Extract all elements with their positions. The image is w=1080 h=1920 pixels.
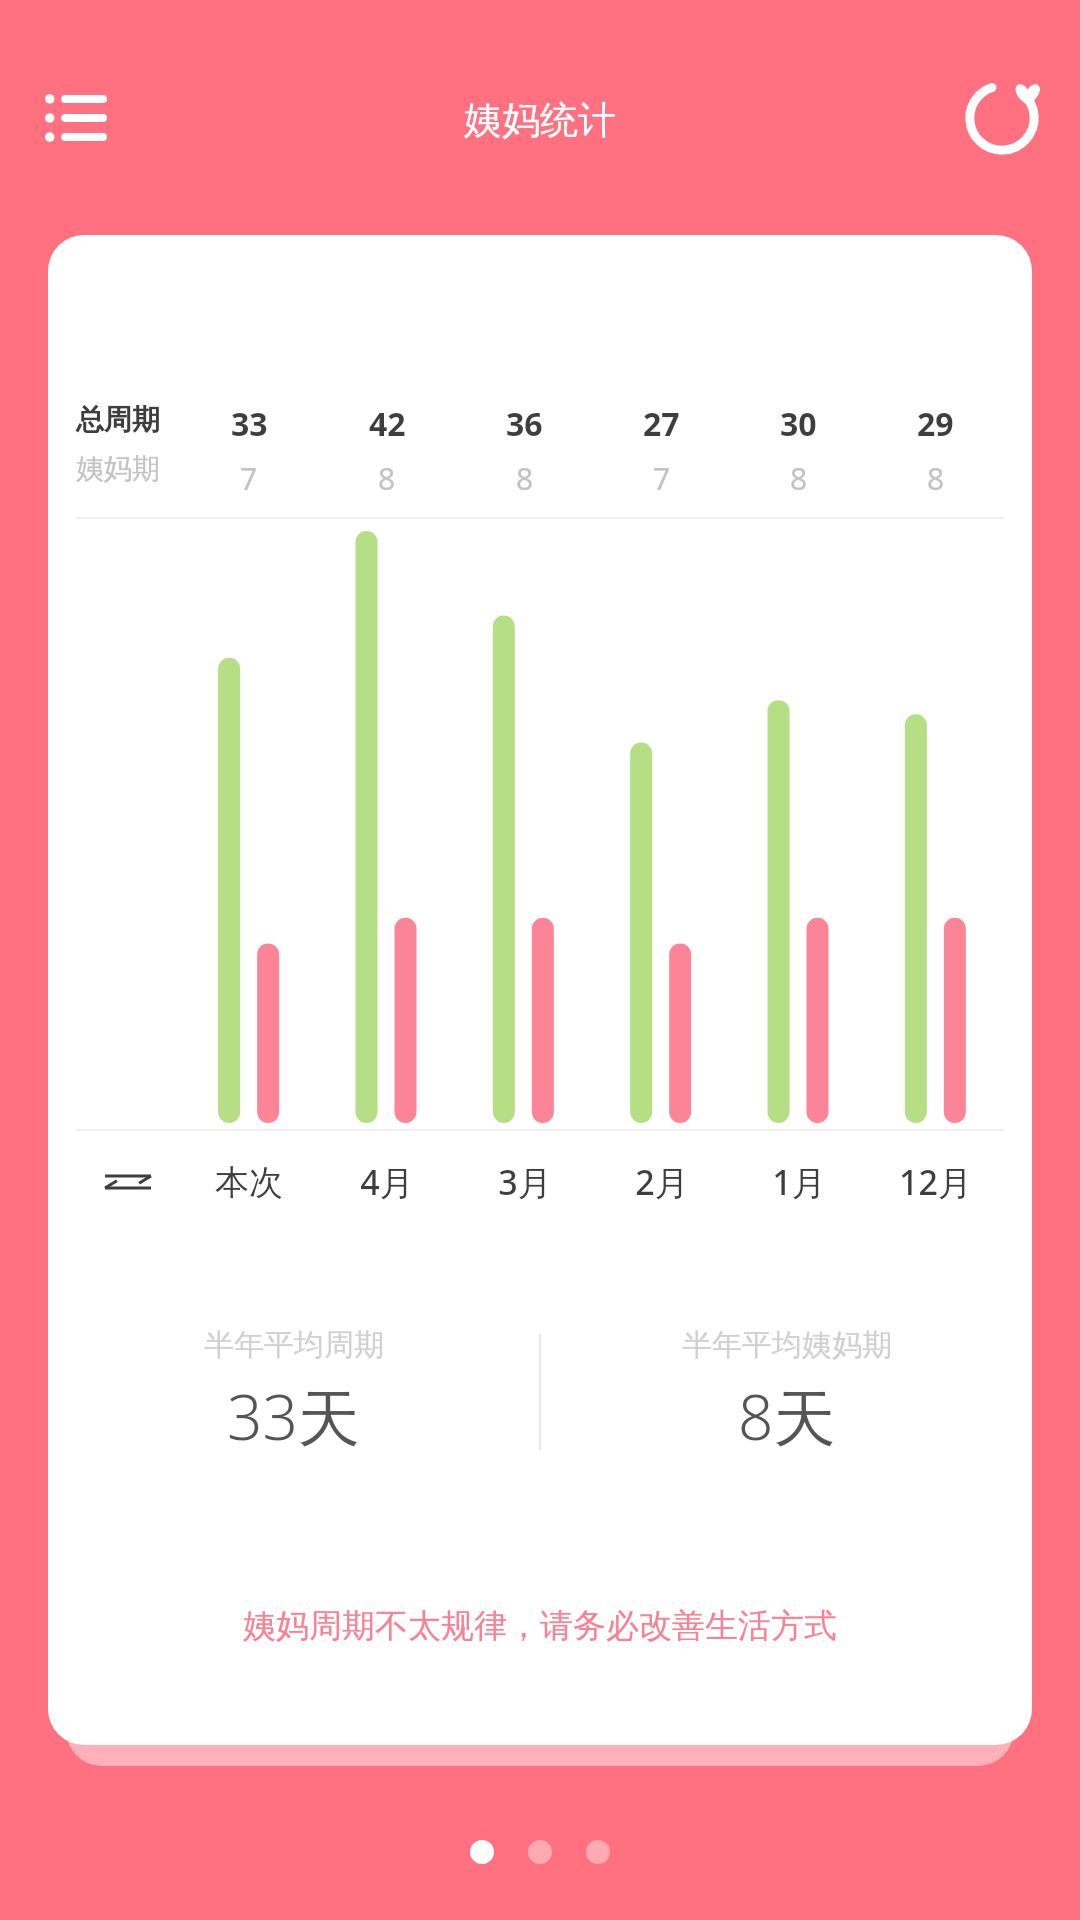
staticText: 8天: [738, 1374, 836, 1459]
staticText: 33天: [227, 1374, 360, 1459]
staticText: 总周期: [76, 402, 160, 437]
staticText: 33: [231, 402, 268, 446]
staticText: 42: [369, 402, 406, 446]
staticText: 8: [378, 458, 396, 499]
button[interactable]: Page 3: [586, 1840, 610, 1864]
staticText: 8: [790, 458, 808, 499]
button[interactable]: Menu: [34, 76, 118, 160]
staticText: 30: [780, 402, 817, 446]
button[interactable]: Page 2: [528, 1840, 552, 1864]
staticText: 12月: [899, 1159, 972, 1205]
button[interactable]: Switch chart: [76, 1155, 180, 1209]
staticText: 姨妈期: [76, 451, 160, 486]
staticText: 7: [240, 458, 258, 499]
staticText: 4月: [360, 1159, 414, 1205]
staticText: 3月: [498, 1159, 552, 1205]
staticText: 29: [917, 402, 954, 446]
staticText: 姨妈周期不太规律，请务必改善生活方式: [48, 1605, 1032, 1647]
staticText: 1月: [772, 1159, 826, 1205]
staticText: 27: [643, 402, 680, 446]
staticText: 8: [927, 458, 945, 499]
button[interactable]: 半年平均周期: [48, 1326, 539, 1459]
button[interactable]: Cycle tracker: [954, 70, 1050, 166]
staticText: 姨妈统计: [464, 96, 616, 144]
staticText: 36: [506, 402, 543, 446]
button[interactable]: 半年平均姨妈期: [541, 1326, 1032, 1459]
staticText: 8: [516, 458, 534, 499]
staticText: 7: [653, 458, 671, 499]
button[interactable]: Page 1: [470, 1840, 494, 1864]
staticText: 本次: [215, 1161, 283, 1204]
staticText: 半年平均姨妈期: [682, 1326, 892, 1364]
staticText: 半年平均周期: [204, 1326, 384, 1364]
staticText: 2月: [635, 1159, 689, 1205]
